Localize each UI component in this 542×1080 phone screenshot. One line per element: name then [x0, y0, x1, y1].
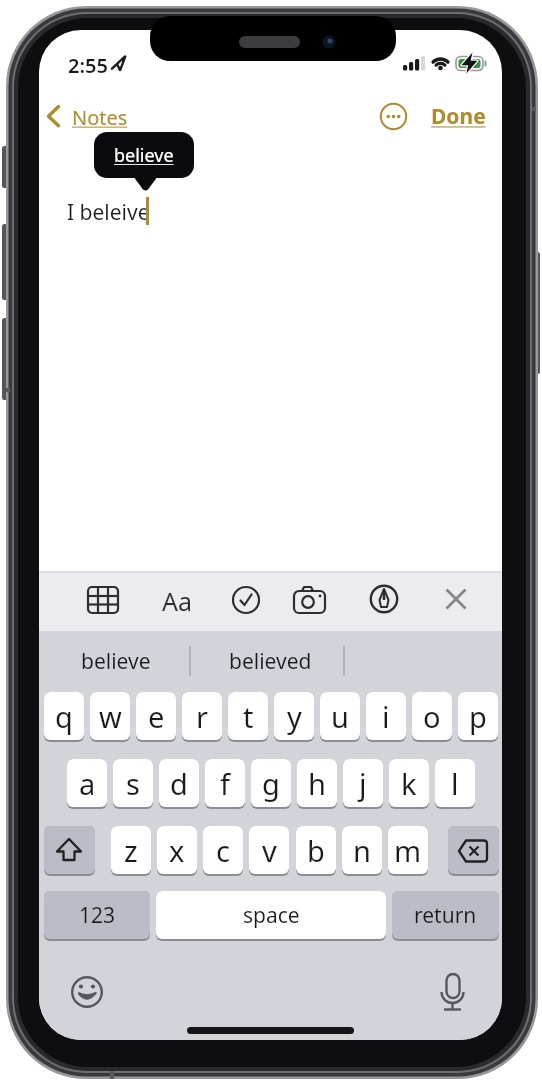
button[interactable]: [379, 102, 408, 131]
button[interactable]: [205, 759, 245, 809]
staticText: a: [79, 764, 96, 803]
button[interactable]: [458, 692, 498, 742]
button[interactable]: [296, 826, 336, 876]
staticText: m: [394, 831, 422, 870]
button[interactable]: Notes: [66, 103, 134, 131]
button[interactable]: [368, 584, 402, 616]
staticText: believe: [114, 143, 174, 168]
staticText: c: [216, 831, 230, 870]
staticText: Done: [431, 102, 486, 130]
button[interactable]: [113, 759, 153, 809]
staticText: q: [55, 697, 73, 736]
staticText: believed: [229, 647, 312, 676]
button[interactable]: [136, 692, 176, 742]
button[interactable]: [388, 826, 428, 876]
button[interactable]: [392, 891, 499, 941]
staticText: z: [124, 831, 138, 870]
button[interactable]: [44, 891, 150, 941]
button[interactable]: [274, 692, 314, 742]
button[interactable]: [292, 584, 326, 616]
button[interactable]: [156, 891, 386, 941]
staticText: f: [220, 764, 230, 803]
button[interactable]: [228, 692, 268, 742]
button[interactable]: [366, 692, 406, 742]
staticText: v: [262, 831, 277, 870]
staticText: h: [308, 764, 326, 803]
button[interactable]: [440, 584, 474, 616]
staticText: u: [331, 697, 349, 736]
staticText: o: [423, 697, 441, 736]
staticText: l: [451, 764, 459, 803]
button[interactable]: [70, 975, 104, 1009]
button[interactable]: believe: [39, 645, 193, 677]
staticText: b: [307, 831, 325, 870]
staticText: g: [262, 764, 280, 803]
staticText: Notes: [72, 104, 128, 131]
button[interactable]: [90, 692, 130, 742]
button[interactable]: [342, 826, 382, 876]
button[interactable]: [436, 972, 470, 1012]
button[interactable]: [203, 826, 243, 876]
button[interactable]: [412, 692, 452, 742]
staticText: x: [169, 831, 185, 870]
staticText: e: [148, 697, 165, 736]
button[interactable]: [435, 759, 475, 809]
staticText: y: [287, 697, 302, 736]
button[interactable]: [44, 692, 84, 742]
staticText: r: [196, 697, 208, 736]
staticText: 123: [79, 901, 116, 930]
button[interactable]: [297, 759, 337, 809]
staticText: k: [401, 764, 417, 803]
button[interactable]: [44, 826, 95, 876]
staticText: w: [99, 697, 122, 736]
button[interactable]: [157, 826, 197, 876]
button[interactable]: [448, 826, 499, 876]
staticText: p: [469, 697, 487, 736]
button[interactable]: [182, 692, 222, 742]
staticText: s: [126, 764, 140, 803]
button[interactable]: believed: [193, 645, 347, 677]
button[interactable]: Aa: [157, 584, 197, 616]
button[interactable]: [343, 759, 383, 809]
staticText: I beleive: [67, 198, 150, 227]
staticText: return: [414, 901, 477, 930]
staticText: 2:55: [68, 52, 108, 74]
staticText: i: [382, 697, 390, 736]
button[interactable]: [230, 584, 264, 616]
staticText: space: [243, 901, 300, 930]
staticText: t: [243, 697, 254, 736]
button[interactable]: [251, 759, 291, 809]
staticText: Aa: [162, 584, 193, 616]
button[interactable]: [88, 584, 122, 616]
button[interactable]: [320, 692, 360, 742]
button[interactable]: [67, 759, 107, 809]
button[interactable]: [249, 826, 289, 876]
staticText: believe: [81, 647, 151, 676]
button[interactable]: [111, 826, 151, 876]
staticText: n: [353, 831, 371, 870]
staticText: j: [359, 764, 367, 803]
button[interactable]: [159, 759, 199, 809]
staticText: d: [170, 764, 188, 803]
button[interactable]: Done: [428, 102, 488, 130]
button[interactable]: [389, 759, 429, 809]
